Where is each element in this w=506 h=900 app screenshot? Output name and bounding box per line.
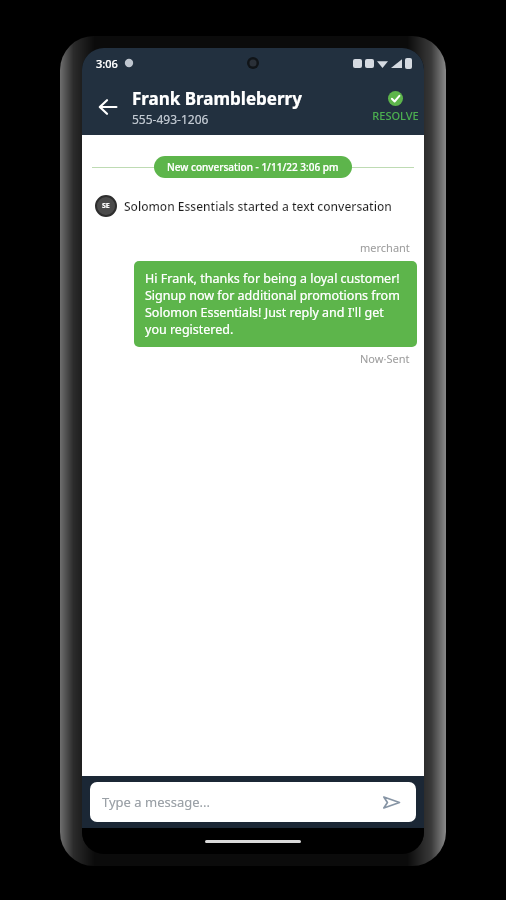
staticText: Now·Sent bbox=[360, 351, 410, 366]
staticText: SE bbox=[102, 201, 110, 211]
button[interactable]: Back bbox=[88, 87, 128, 127]
button[interactable]: Hi Frank, thanks for being a loyal custo… bbox=[134, 261, 417, 347]
staticText: Hi Frank, thanks for being a loyal custo… bbox=[145, 270, 406, 338]
button[interactable]: Type a message... bbox=[90, 782, 416, 822]
staticText: 555-493-1206 bbox=[132, 111, 209, 127]
staticText: Frank Brambleberry bbox=[132, 87, 302, 110]
staticText: Type a message... bbox=[102, 793, 378, 811]
staticText: RESOLVE bbox=[372, 108, 419, 123]
staticText: 3:06 bbox=[96, 56, 118, 71]
staticText: Solomon Essentials started a text conver… bbox=[124, 198, 392, 214]
button[interactable]: RESOLVE bbox=[366, 91, 424, 123]
staticText: New conversation - 1/11/22 3:06 pm bbox=[167, 160, 339, 174]
button[interactable]: Send bbox=[378, 789, 404, 815]
staticText: merchant bbox=[360, 240, 410, 255]
